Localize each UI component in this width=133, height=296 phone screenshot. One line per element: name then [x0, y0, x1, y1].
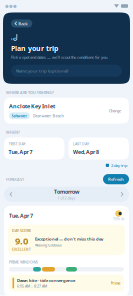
- staticText: Tue, Apr 7: [9, 212, 33, 219]
- staticText: 2-day trip: [111, 163, 127, 168]
- staticText: FIRST DAY: [8, 141, 25, 146]
- button[interactable]: Dawn bite · tide convergence: [9, 274, 124, 291]
- staticText: Waxing Gibbous: [35, 243, 62, 248]
- button[interactable]: LAST DAY: [68, 137, 129, 160]
- staticText: 9.0: [15, 234, 28, 247]
- button[interactable]: Anclote Key Inlet: [4, 98, 129, 124]
- button[interactable]: Previous day: [6, 189, 16, 199]
- staticText: Dawn bite · tide convergence: [17, 278, 75, 283]
- button[interactable]: Back: [11, 19, 32, 27]
- staticText: Clearwater Beach: [32, 113, 63, 118]
- staticText: WHEN?: [6, 130, 20, 135]
- staticText: LAST DAY: [73, 141, 89, 146]
- staticText: Name your trip (optional): [16, 68, 68, 74]
- staticText: Anclote Key Inlet: [9, 102, 55, 110]
- staticText: EXCELLENT: [12, 247, 31, 252]
- staticText: Saltwater: [11, 113, 27, 118]
- staticText: Change: [109, 108, 121, 113]
- staticText: 6:05 AM – 8:27 AM: [17, 284, 47, 288]
- button[interactable]: Refresh: [103, 174, 129, 184]
- staticText: Refresh: [108, 176, 124, 182]
- button[interactable]: Next day: [117, 189, 127, 199]
- staticText: 75% lit: [113, 217, 124, 221]
- staticText: Exceptional — don't miss this day: [35, 236, 103, 242]
- staticText: PRIME WINDOWS: [9, 260, 38, 264]
- staticText: WHERE ARE YOU FISHING?: [6, 90, 54, 95]
- staticText: 1 of 2 days: [57, 196, 75, 200]
- staticText: Tue, Apr 7: [8, 148, 32, 156]
- staticText: FORECAST: [6, 176, 24, 182]
- staticText: ●●●: [5, 3, 17, 8]
- staticText: Tomorrow: [54, 188, 79, 195]
- staticText: Prime: [110, 281, 120, 285]
- staticText: Plan your trip: [11, 43, 58, 53]
- button[interactable]: FIRST DAY: [4, 137, 64, 160]
- staticText: DAY SCORE: [12, 228, 31, 233]
- staticText: Back: [18, 21, 28, 26]
- staticText: Wed, Apr 8: [73, 148, 99, 156]
- staticText: Pick a spot and dates — we'll scout the …: [11, 54, 108, 60]
